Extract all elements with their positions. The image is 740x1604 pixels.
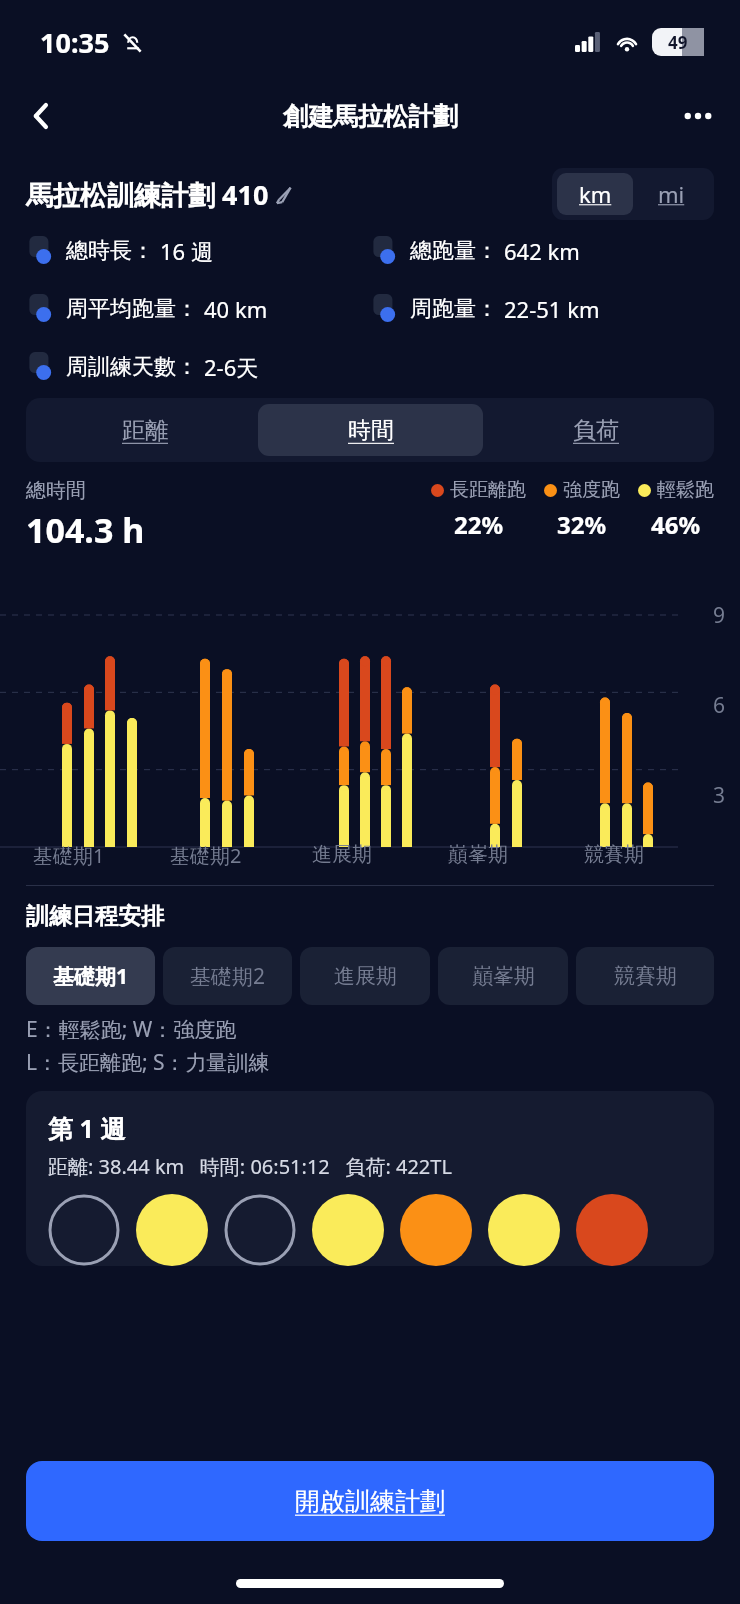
staticText: 總時間 xyxy=(26,478,86,503)
staticText: 進展期 xyxy=(334,963,397,989)
button[interactable]: 負荷 xyxy=(483,404,708,456)
staticText: km xyxy=(579,179,612,209)
staticText: 32% xyxy=(557,508,607,541)
staticText: 長距離跑 xyxy=(450,478,526,502)
button[interactable]: More options xyxy=(674,92,722,140)
staticText: 基礎期2 xyxy=(170,842,242,869)
staticText: 總時長： xyxy=(66,237,154,265)
button[interactable]: 基礎期2 xyxy=(163,947,292,1005)
staticText: 巔峯期 xyxy=(448,842,508,867)
staticText: 創建馬拉松計劃 xyxy=(283,101,458,132)
staticText: 總跑量： xyxy=(410,237,498,265)
staticText: 競賽期 xyxy=(584,842,644,867)
staticText: 周跑量： xyxy=(410,295,498,323)
button[interactable]: Edit name xyxy=(269,179,299,209)
staticText: 輕鬆跑 xyxy=(657,478,714,502)
staticText: 6 xyxy=(713,691,726,720)
staticText: 10:35 xyxy=(40,24,110,61)
staticText: 強度跑 xyxy=(563,478,620,502)
button[interactable]: 進展期 xyxy=(300,947,430,1005)
staticText: 距離 xyxy=(122,416,168,445)
button[interactable]: mi xyxy=(633,173,709,215)
staticText: 2-6天 xyxy=(204,352,259,382)
button[interactable]: 巔峯期 xyxy=(438,947,568,1005)
staticText: 巔峯期 xyxy=(472,963,535,989)
staticText: 第 1 週 xyxy=(48,1111,126,1145)
button[interactable]: Back xyxy=(18,92,66,140)
staticText: 開啟訓練計劃 xyxy=(295,1486,445,1517)
staticText: 周訓練天數： xyxy=(66,353,198,381)
button[interactable]: 距離 xyxy=(32,404,258,456)
button[interactable]: km xyxy=(557,173,633,215)
staticText: 16 週 xyxy=(160,236,213,266)
staticText: 49 xyxy=(668,31,688,54)
button[interactable]: 競賽期 xyxy=(576,947,714,1005)
staticText: 進展期 xyxy=(312,842,372,867)
staticText: mi xyxy=(658,179,685,209)
staticText: 基礎期1 xyxy=(53,962,129,991)
button[interactable]: 開啟訓練計劃 xyxy=(26,1461,714,1541)
staticText: 46% xyxy=(651,508,701,541)
staticText: 22-51 km xyxy=(504,294,600,324)
staticText: 基礎期2 xyxy=(190,962,266,991)
staticText: 競賽期 xyxy=(614,963,677,989)
staticText: 時間 xyxy=(348,416,394,445)
staticText: 馬拉松訓練計劃 410 xyxy=(26,176,269,213)
staticText: 40 km xyxy=(204,294,268,324)
staticText: 22% xyxy=(454,508,504,541)
button[interactable]: 基礎期1 xyxy=(26,947,155,1005)
staticText: 負荷 xyxy=(573,416,619,445)
staticText: 9 xyxy=(713,601,726,630)
staticText: 訓練日程安排 xyxy=(26,902,164,931)
button[interactable]: 第 1 週 xyxy=(26,1091,714,1266)
staticText: 周平均跑量： xyxy=(66,295,198,323)
staticText: 104.3 h xyxy=(26,507,145,553)
staticText: E：輕鬆跑; W：強度跑 xyxy=(26,1015,237,1044)
staticText: 距離: 38.44 km 時間: 06:51:12 負荷: 422TL xyxy=(48,1153,452,1180)
staticText: 642 km xyxy=(504,236,580,266)
staticText: 基礎期1 xyxy=(33,842,105,869)
button[interactable]: 時間 xyxy=(258,404,483,456)
staticText: L：長距離跑; S：力量訓練 xyxy=(26,1048,270,1077)
staticText: 3 xyxy=(713,781,726,810)
